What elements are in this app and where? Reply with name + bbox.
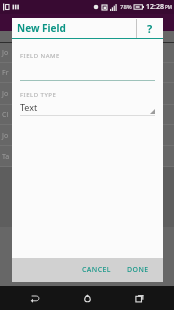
button[interactable]: Back: [18, 286, 52, 310]
button[interactable]: Recent apps: [122, 286, 156, 310]
staticText: DONE: [127, 265, 149, 275]
staticText: New Field: [17, 21, 66, 35]
staticText: CANCEL: [82, 265, 111, 275]
staticText: PM: [165, 4, 172, 10]
staticText: Jo: [2, 89, 9, 99]
staticText: Fr: [2, 68, 9, 78]
staticText: Cl: [2, 110, 9, 120]
staticText: FIELD NAME: [20, 52, 60, 60]
button[interactable]: [20, 70, 155, 81]
button[interactable]: Fr: [0, 63, 174, 83]
button[interactable]: Jo: [0, 43, 174, 63]
button[interactable]: CANCEL: [74, 258, 119, 282]
staticText: FIELD TYPE: [20, 91, 57, 99]
staticText: Jo: [2, 131, 9, 141]
staticText: Text: [20, 101, 38, 113]
button[interactable]: DONE: [119, 258, 157, 282]
staticText: Jo: [2, 48, 9, 58]
button[interactable]: Cl: [0, 105, 174, 125]
staticText: 78%: [120, 3, 132, 11]
button[interactable]: Jo: [0, 125, 174, 146]
button[interactable]: Text: [12, 101, 163, 116]
button[interactable]: Help: [137, 18, 163, 38]
button[interactable]: Jo: [0, 83, 174, 105]
staticText: Ta: [2, 152, 10, 162]
staticText: ?: [147, 21, 153, 36]
button[interactable]: Ta: [0, 146, 174, 167]
staticText: 12:28: [146, 2, 164, 12]
button[interactable]: Home: [70, 286, 104, 310]
